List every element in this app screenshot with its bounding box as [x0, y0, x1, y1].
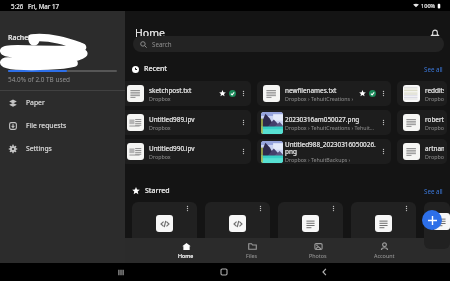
button[interactable]: Search: [133, 36, 444, 52]
staticText: See all: [424, 65, 443, 73]
staticText: 54.0% of 2.0 TB used: [8, 75, 70, 84]
button[interactable]: sketchpost.txt: [121, 81, 251, 106]
button[interactable]: Notifications: [427, 25, 443, 41]
button[interactable]: More options: [328, 203, 339, 214]
staticText: Files: [246, 252, 258, 259]
staticText: Dropbox: [425, 124, 444, 131]
button[interactable]: More options: [239, 139, 248, 164]
button[interactable]: Account: [351, 238, 417, 263]
staticText: Untitled989.ipv: [149, 115, 195, 124]
button[interactable]: More options: [255, 203, 266, 214]
staticText: Dropbox: [425, 153, 444, 160]
button[interactable]: More options: [132, 202, 197, 249]
button[interactable]: Untitled989.ipv: [121, 110, 251, 135]
button[interactable]: More options: [205, 202, 270, 249]
staticText: Untitled990.ipv: [149, 144, 195, 153]
staticText: 100%: [421, 2, 436, 10]
staticText: robertbrown_notes.txt: [425, 115, 444, 124]
button[interactable]: Recent apps: [110, 263, 132, 281]
staticText: artnames_list.txt: [425, 144, 444, 153]
staticText: Paper: [26, 98, 45, 107]
button[interactable]: artnames_list.txt: [397, 139, 447, 164]
button[interactable]: 20230316am050027.png: [257, 110, 391, 135]
staticText: Recent: [144, 64, 167, 74]
button[interactable]: More options: [401, 203, 412, 214]
staticText: Fri, Mar 17: [28, 2, 59, 10]
staticText: Dropbox: [149, 124, 171, 131]
button[interactable]: More options: [379, 139, 388, 164]
button[interactable]: Starred item: [424, 202, 450, 249]
button[interactable]: Photos: [285, 238, 351, 263]
button[interactable]: Settings: [0, 137, 125, 160]
button[interactable]: Home: [153, 238, 219, 263]
button[interactable]: Home: [213, 263, 235, 281]
button[interactable]: Files: [219, 238, 285, 263]
staticText: Rachel: [8, 33, 31, 43]
staticText: Search: [152, 40, 172, 48]
staticText: Dropbox › TehuitCreations › TehuitArt ›: [285, 124, 376, 131]
button[interactable]: More options: [239, 110, 248, 135]
button[interactable]: More options: [351, 202, 416, 249]
staticText: 5:26: [11, 2, 24, 10]
button[interactable]: Create new: [422, 210, 442, 230]
staticText: sketchpost.txt: [149, 86, 192, 95]
button[interactable]: See all: [424, 65, 443, 73]
staticText: Dropbox › Tehuit ›: [425, 95, 444, 102]
button[interactable]: Paper: [0, 91, 125, 114]
staticText: File requests: [26, 121, 67, 130]
button[interactable]: More options: [239, 81, 248, 106]
button[interactable]: More options: [182, 203, 193, 214]
staticText: Untitled988_20230316050026.png: [285, 140, 376, 156]
button[interactable]: More options: [379, 110, 388, 135]
button[interactable]: Back: [313, 263, 335, 281]
staticText: Dropbox: [149, 153, 171, 160]
staticText: Starred: [145, 186, 170, 196]
staticText: See all: [424, 187, 443, 195]
staticText: Dropbox › TehuitCreations ›: [285, 95, 354, 102]
staticText: Home: [178, 252, 194, 259]
staticText: redditsavedimages.txt: [425, 86, 444, 95]
staticText: Photos: [309, 252, 327, 259]
button[interactable]: More options: [379, 81, 388, 106]
button[interactable]: See all: [424, 187, 443, 195]
staticText: Home: [135, 26, 165, 40]
button[interactable]: redditsavedimages.txt: [397, 81, 447, 106]
button[interactable]: robertbrown_notes.txt: [397, 110, 447, 135]
staticText: Account: [374, 252, 395, 259]
button[interactable]: Untitled988_20230316050026.png: [257, 139, 391, 164]
button[interactable]: File requests: [0, 114, 125, 137]
button[interactable]: Untitled990.ipv: [121, 139, 251, 164]
staticText: Dropbox › TehuitBackups ›: [285, 156, 351, 163]
button[interactable]: More options: [278, 202, 343, 249]
staticText: Dropbox: [149, 95, 171, 102]
button[interactable]: newfilenames.txt: [257, 81, 391, 106]
staticText: Settings: [26, 144, 52, 153]
staticText: newfilenames.txt: [285, 86, 337, 95]
staticText: 20230316am050027.png: [285, 115, 360, 124]
